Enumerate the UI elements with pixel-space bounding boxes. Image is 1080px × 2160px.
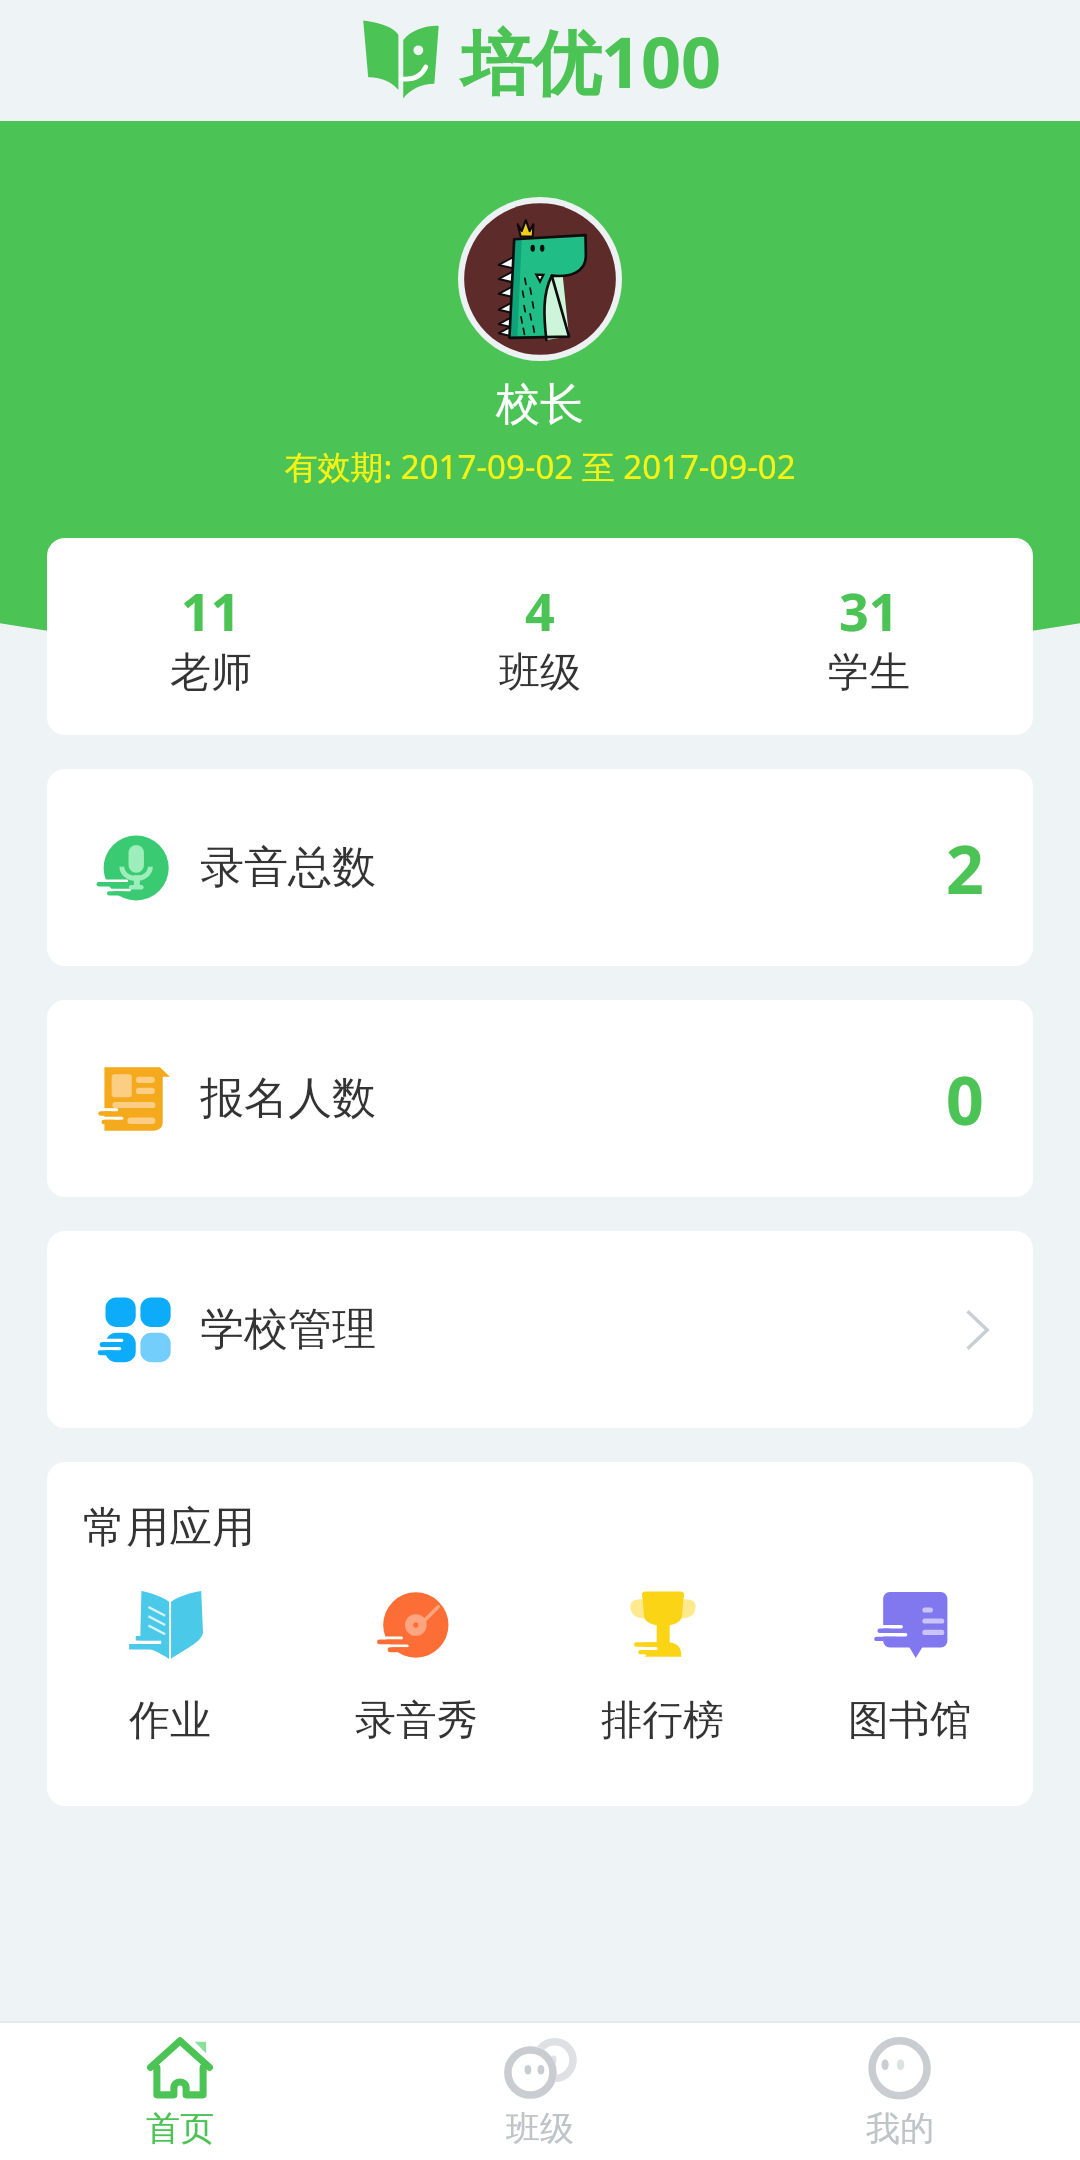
button[interactable]: 我的 [720,2021,1080,2160]
button[interactable]: 11 [47,538,375,735]
staticText: 我的 [866,2107,934,2150]
staticText: 报名人数 [200,1071,376,1126]
button[interactable]: 学校管理 [47,1231,1033,1428]
button[interactable]: 录音秀 [293,1581,539,1747]
staticText: 4 [525,575,555,646]
staticText: 校长 [0,377,1080,432]
staticText: 首页 [146,2107,214,2150]
staticText: 班级 [506,2107,574,2150]
staticText: 图书馆 [848,1695,971,1747]
button[interactable]: 图书馆 [786,1581,1033,1747]
button[interactable]: 4 [375,538,704,735]
button[interactable]: 31 [704,538,1033,735]
staticText: 11 [181,575,241,646]
staticText: 学校管理 [200,1302,376,1357]
button[interactable]: 作业 [47,1581,293,1747]
staticText: 录音总数 [200,840,376,895]
staticText: 2 [946,823,984,913]
staticText: 排行榜 [601,1695,724,1747]
button[interactable]: 报名人数 [47,1000,1033,1197]
button[interactable]: 排行榜 [539,1581,786,1747]
staticText: 培优100 [461,13,722,109]
staticText: 学生 [828,647,910,699]
staticText: 常用应用 [83,1501,255,1555]
staticText: 作业 [129,1695,211,1747]
button[interactable]: 录音总数 [47,769,1033,966]
staticText: 录音秀 [355,1695,478,1747]
staticText: 班级 [499,647,581,699]
staticText: 有效期: 2017-09-02 至 2017-09-02 [0,444,1080,489]
button[interactable]: 班级 [360,2021,720,2160]
staticText: 老师 [170,647,252,699]
staticText: 0 [946,1054,984,1144]
button[interactable]: 首页 [0,2021,360,2160]
staticText: 31 [839,575,899,646]
